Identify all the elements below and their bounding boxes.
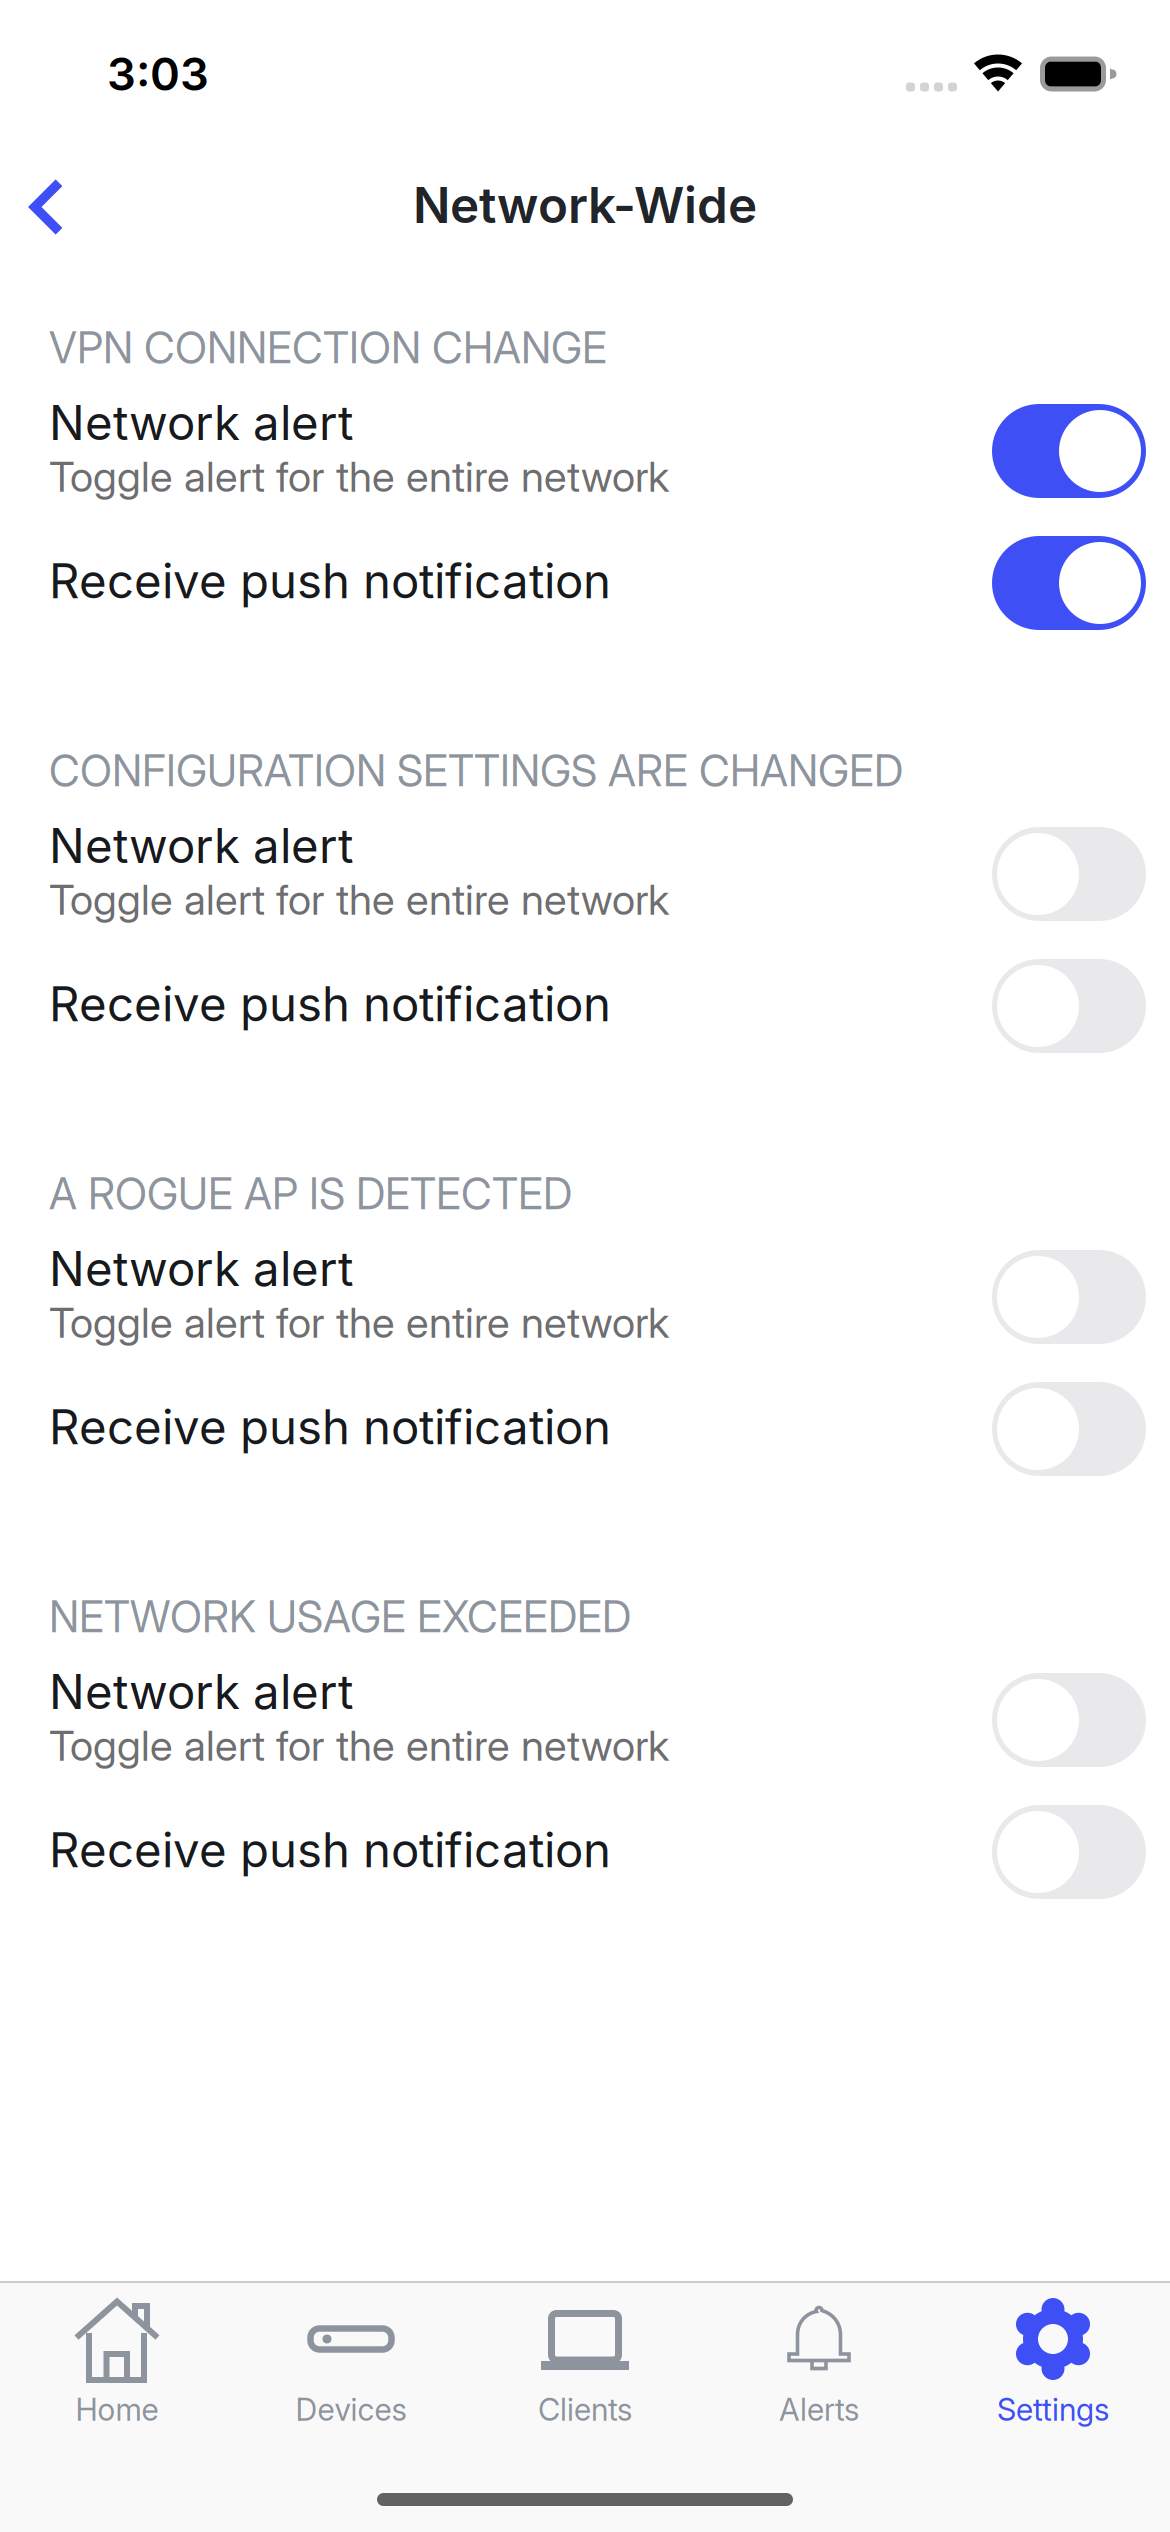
staticText: Settings bbox=[997, 2391, 1109, 2428]
button[interactable]: Clients bbox=[468, 2283, 702, 2429]
staticText: A ROGUE AP IS DETECTED bbox=[49, 1168, 572, 1219]
staticText: Receive push notification bbox=[49, 1821, 611, 1879]
button[interactable]: Receive push notification bbox=[0, 1821, 1170, 1879]
button[interactable]: Network alert bbox=[0, 1239, 1170, 1349]
staticText: VPN CONNECTION CHANGE bbox=[49, 322, 607, 373]
button[interactable]: Home bbox=[0, 2283, 234, 2429]
staticText: Receive push notification bbox=[49, 552, 611, 610]
button[interactable]: Devices bbox=[234, 2283, 468, 2429]
staticText: Network alert bbox=[49, 1663, 353, 1720]
staticText: Receive push notification bbox=[49, 975, 611, 1033]
button[interactable]: Alerts bbox=[702, 2283, 936, 2429]
staticText: Network alert bbox=[49, 1240, 353, 1297]
button[interactable]: Settings bbox=[936, 2283, 1170, 2429]
staticText: Devices bbox=[295, 2391, 406, 2428]
staticText: NETWORK USAGE EXCEEDED bbox=[49, 1591, 631, 1642]
staticText: 3:03 bbox=[107, 47, 209, 101]
staticText: Toggle alert for the entire network bbox=[49, 1297, 669, 1348]
button[interactable]: Back bbox=[0, 147, 94, 257]
staticText: Home bbox=[75, 2391, 158, 2428]
button[interactable]: Network alert bbox=[0, 1662, 1170, 1772]
staticText: Network alert bbox=[49, 817, 353, 874]
staticText: Toggle alert for the entire network bbox=[49, 451, 669, 502]
button[interactable]: Network alert bbox=[0, 393, 1170, 503]
staticText: Toggle alert for the entire network bbox=[49, 874, 669, 925]
staticText: Network alert bbox=[49, 394, 353, 451]
staticText: Clients bbox=[538, 2391, 632, 2428]
staticText: CONFIGURATION SETTINGS ARE CHANGED bbox=[49, 745, 903, 796]
staticText: Network-Wide bbox=[413, 175, 757, 235]
button[interactable]: Receive push notification bbox=[0, 975, 1170, 1033]
staticText: Receive push notification bbox=[49, 1398, 611, 1456]
button[interactable]: Receive push notification bbox=[0, 552, 1170, 610]
button[interactable]: Network alert bbox=[0, 816, 1170, 926]
staticText: Alerts bbox=[779, 2391, 859, 2428]
button[interactable]: Receive push notification bbox=[0, 1398, 1170, 1456]
staticText: Toggle alert for the entire network bbox=[49, 1720, 669, 1771]
